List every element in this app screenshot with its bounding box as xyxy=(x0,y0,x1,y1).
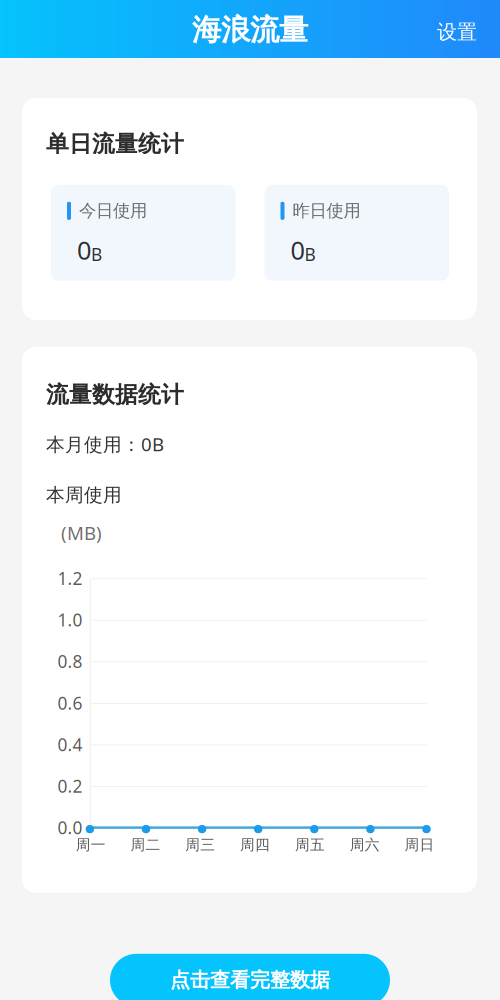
staticText: 0.4 xyxy=(57,733,82,756)
button[interactable]: 设置 xyxy=(421,5,500,53)
staticText: 周三 xyxy=(185,836,215,854)
staticText: 0.2 xyxy=(57,774,82,797)
staticText: B xyxy=(91,243,102,266)
staticText: (MB) xyxy=(61,520,102,545)
staticText: 1.2 xyxy=(57,567,82,590)
staticText: 0 xyxy=(77,233,91,267)
staticText: 周六 xyxy=(350,836,380,854)
staticText: 昨日使用 xyxy=(292,200,360,221)
staticText: 0 xyxy=(290,233,304,267)
staticText: 点击查看完整数据 xyxy=(170,968,330,992)
staticText: 周日 xyxy=(404,836,434,854)
staticText: 设置 xyxy=(437,20,477,44)
staticText: B xyxy=(304,243,315,266)
staticText: 周四 xyxy=(240,836,270,854)
staticText: 周二 xyxy=(130,836,160,854)
staticText: 海浪流量 xyxy=(192,12,308,48)
staticText: 单日流量统计 xyxy=(46,130,184,158)
staticText: 流量数据统计 xyxy=(46,381,184,409)
staticText: 1.0 xyxy=(57,608,82,631)
staticText: 本周使用 xyxy=(46,483,122,506)
staticText: 周五 xyxy=(295,836,325,854)
button[interactable]: 点击查看完整数据 xyxy=(110,954,390,1000)
staticText: 0.6 xyxy=(57,691,82,714)
staticText: 本月使用：0B xyxy=(46,432,164,456)
staticText: 周一 xyxy=(76,836,106,854)
staticText: 0.8 xyxy=(57,650,82,673)
staticText: 今日使用 xyxy=(79,200,147,221)
staticText: 0.0 xyxy=(57,816,82,839)
